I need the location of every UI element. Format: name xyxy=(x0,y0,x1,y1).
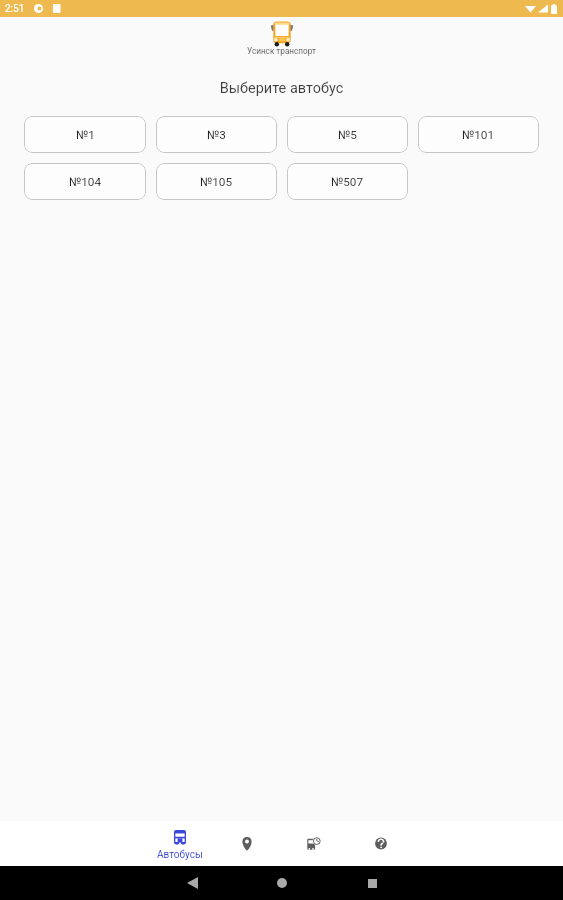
button[interactable]: №101 xyxy=(418,116,539,153)
button[interactable]: №5 xyxy=(287,116,408,153)
staticText: №5 xyxy=(338,128,357,142)
button[interactable]: Автобусы xyxy=(146,821,213,866)
button[interactable]: Recents xyxy=(327,866,417,900)
staticText: Выберите автобус xyxy=(0,80,563,97)
staticText: Усинск транспорт xyxy=(247,46,316,56)
staticText: №1 xyxy=(76,128,95,142)
button[interactable]: №3 xyxy=(156,116,277,153)
staticText: №101 xyxy=(462,128,495,142)
staticText: №3 xyxy=(207,128,226,142)
button[interactable]: Schedule xyxy=(280,821,347,866)
staticText: №104 xyxy=(69,175,102,189)
button[interactable]: №105 xyxy=(156,163,277,200)
button[interactable]: Map xyxy=(213,821,280,866)
button[interactable]: №1 xyxy=(24,116,146,153)
button[interactable]: №507 xyxy=(287,163,408,200)
button[interactable]: Back xyxy=(147,866,237,900)
button[interactable]: №104 xyxy=(24,163,146,200)
staticText: №105 xyxy=(200,175,233,189)
staticText: №507 xyxy=(331,175,364,189)
staticText: 2:51 xyxy=(5,3,25,15)
staticText: Автобусы xyxy=(157,849,203,861)
button[interactable]: Home xyxy=(237,866,327,900)
button[interactable]: Help xyxy=(347,821,414,866)
